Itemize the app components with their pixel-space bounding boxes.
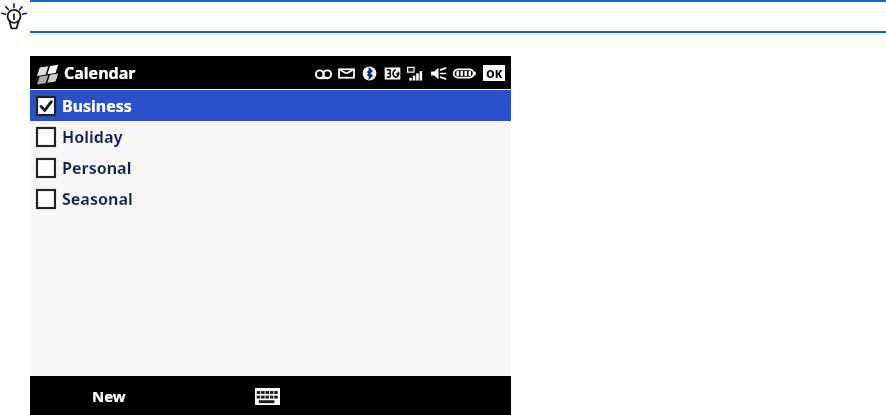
staticText: Holiday [62, 126, 123, 148]
staticText: New [92, 386, 126, 406]
staticText: Seasonal [62, 188, 133, 210]
staticText: Personal [62, 157, 132, 179]
staticText: OK [486, 66, 503, 81]
button[interactable]: OK [483, 65, 505, 81]
button[interactable]: Personal [30, 152, 511, 183]
button[interactable]: Business [30, 90, 511, 121]
staticText: Calendar [64, 62, 136, 84]
button[interactable]: Keyboard [252, 383, 282, 409]
button[interactable]: New [82, 380, 136, 412]
button[interactable]: Holiday [30, 121, 511, 152]
staticText: Business [62, 95, 132, 117]
button[interactable]: Seasonal [30, 183, 511, 214]
